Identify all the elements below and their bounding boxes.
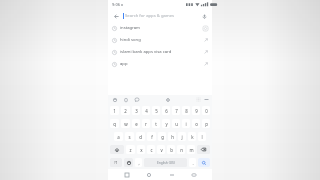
staticText: u xyxy=(175,121,178,127)
button[interactable]: n xyxy=(177,145,185,154)
staticText: e xyxy=(135,121,138,127)
staticText: 1 xyxy=(113,108,116,114)
button[interactable]: Back xyxy=(111,11,121,21)
staticText: c xyxy=(150,147,153,153)
button[interactable]: l xyxy=(198,132,206,141)
button[interactable]: e xyxy=(132,119,140,128)
staticText: a xyxy=(117,134,120,140)
staticText: q xyxy=(113,121,116,127)
button[interactable]: Voice search xyxy=(199,11,209,21)
button[interactable]: 8 xyxy=(182,106,190,115)
button[interactable]: w xyxy=(121,119,130,128)
staticText: s xyxy=(128,134,131,140)
staticText: k xyxy=(191,134,194,140)
staticText: v xyxy=(160,147,163,153)
button[interactable]: app xyxy=(108,58,212,70)
staticText: g xyxy=(161,134,164,140)
button[interactable]: u xyxy=(172,119,180,128)
button[interactable]: y xyxy=(162,119,170,128)
button[interactable]: r xyxy=(142,119,150,128)
button[interactable]: instagram xyxy=(108,22,212,34)
button[interactable]: o xyxy=(192,119,200,128)
staticText: y xyxy=(165,121,168,127)
button[interactable]: s xyxy=(125,132,134,141)
button[interactable]: . xyxy=(189,158,196,167)
button[interactable]: Symbols xyxy=(110,158,122,167)
button[interactable]: GIF xyxy=(133,96,140,103)
staticText: j xyxy=(181,134,183,140)
button[interactable]: Clipboard xyxy=(122,96,129,103)
button[interactable]: m xyxy=(187,145,195,154)
staticText: ?1 xyxy=(114,160,118,165)
button[interactable]: Recents xyxy=(122,170,131,179)
button[interactable]: Backspace xyxy=(197,145,210,154)
staticText: x xyxy=(140,147,143,153)
button[interactable]: a xyxy=(114,132,123,141)
staticText: n xyxy=(180,147,183,153)
staticText: 3 xyxy=(135,108,138,114)
staticText: English (US) xyxy=(157,161,175,165)
button[interactable]: t xyxy=(152,119,160,128)
button[interactable]: d xyxy=(136,132,145,141)
button[interactable]: Sticker xyxy=(111,96,118,103)
staticText: 6 xyxy=(165,108,168,114)
staticText: w xyxy=(124,121,128,127)
button[interactable]: j xyxy=(178,132,186,141)
button[interactable]: b xyxy=(167,145,175,154)
staticText: r xyxy=(145,121,147,127)
button[interactable]: Search xyxy=(198,158,210,167)
staticText: 9:06 xyxy=(112,2,120,7)
staticText: m xyxy=(189,147,194,153)
button[interactable]: i xyxy=(182,119,190,128)
staticText: . xyxy=(192,160,194,166)
button[interactable]: islami bank apps visa card xyxy=(108,46,212,58)
button[interactable]: z xyxy=(126,145,135,154)
button[interactable]: Back xyxy=(167,170,176,179)
button[interactable]: p xyxy=(202,119,210,128)
button[interactable]: c xyxy=(147,145,155,154)
button[interactable]: Space xyxy=(144,158,187,167)
button[interactable]: Emoji xyxy=(124,158,133,167)
button[interactable]: k xyxy=(188,132,196,141)
button[interactable]: , xyxy=(135,158,142,167)
button[interactable]: g xyxy=(158,132,166,141)
button[interactable]: x xyxy=(137,145,145,154)
staticText: 9 xyxy=(195,108,198,114)
button[interactable]: 9 xyxy=(192,106,200,115)
staticText: z xyxy=(129,147,132,153)
button[interactable]: q xyxy=(110,119,119,128)
staticText: f xyxy=(151,134,153,140)
staticText: i xyxy=(185,121,187,127)
button[interactable]: Settings xyxy=(164,96,171,103)
button[interactable]: shift xyxy=(110,145,124,154)
button[interactable]: 2 xyxy=(121,106,130,115)
button[interactable]: 7 xyxy=(172,106,180,115)
button[interactable]: 4 xyxy=(142,106,150,115)
staticText: l xyxy=(201,134,203,140)
button[interactable]: h xyxy=(168,132,176,141)
staticText: app xyxy=(120,61,204,67)
staticText: o xyxy=(195,121,198,127)
staticText: p xyxy=(205,121,208,127)
staticText: islami bank apps visa card xyxy=(120,49,204,55)
button[interactable]: Home xyxy=(144,170,153,179)
button[interactable]: 6 xyxy=(162,106,170,115)
staticText: 4 xyxy=(145,108,148,114)
staticText: 5 xyxy=(155,108,158,114)
button[interactable]: 1 xyxy=(110,106,119,115)
button[interactable]: v xyxy=(157,145,165,154)
button[interactable]: 5 xyxy=(152,106,160,115)
staticText: Search for apps & games xyxy=(125,13,175,19)
button[interactable]: hindi song xyxy=(108,34,212,46)
staticText: 2 xyxy=(124,108,127,114)
button[interactable]: 3 xyxy=(132,106,140,115)
button[interactable]: 0 xyxy=(202,106,210,115)
staticText: h xyxy=(171,134,174,140)
staticText: instagram xyxy=(120,25,203,31)
staticText: 0 xyxy=(205,108,208,114)
button[interactable]: f xyxy=(147,132,156,141)
staticText: hindi song xyxy=(120,37,204,43)
button[interactable]: Keyboard xyxy=(189,170,198,179)
staticText: , xyxy=(138,160,140,166)
staticText: 8 xyxy=(185,108,188,114)
